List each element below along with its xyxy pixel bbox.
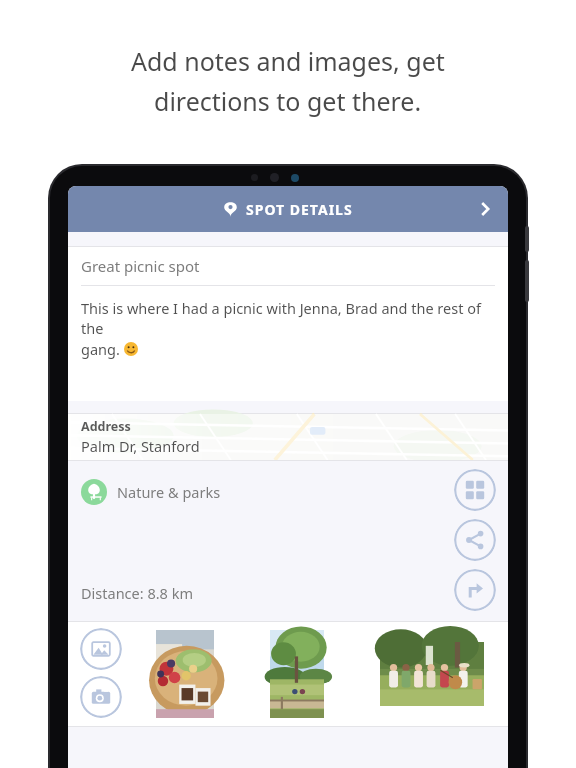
button[interactable] (380, 642, 484, 706)
button[interactable]: Share (454, 519, 496, 561)
staticText: This is where I had a picnic with Jenna,… (81, 298, 495, 339)
staticText: Nature & parks (117, 482, 221, 502)
button[interactable]: SPOT DETAILS (68, 186, 508, 232)
button[interactable]: Category (454, 469, 496, 511)
button[interactable]: Directions (454, 569, 496, 611)
button[interactable]: This is where I had a picnic with Jenna,… (68, 286, 508, 401)
staticText: SPOT DETAILS (246, 200, 353, 219)
button[interactable] (270, 630, 324, 718)
button[interactable] (156, 630, 214, 718)
button[interactable]: Address (68, 414, 508, 460)
staticText: directions to get there. (154, 84, 422, 118)
button[interactable]: Next (462, 186, 508, 232)
button[interactable]: Great picnic spot (68, 247, 508, 285)
staticText: Address (81, 418, 131, 435)
staticText: Distance: 8.8 km (81, 583, 193, 603)
button[interactable]: Take photo (80, 676, 122, 718)
staticText: Add notes and images, get (131, 44, 445, 78)
staticText: gang. (81, 339, 124, 359)
staticText: Palm Dr, Stanford (81, 436, 200, 456)
button[interactable]: Pick image (80, 628, 122, 670)
staticText: Great picnic spot (81, 256, 200, 276)
